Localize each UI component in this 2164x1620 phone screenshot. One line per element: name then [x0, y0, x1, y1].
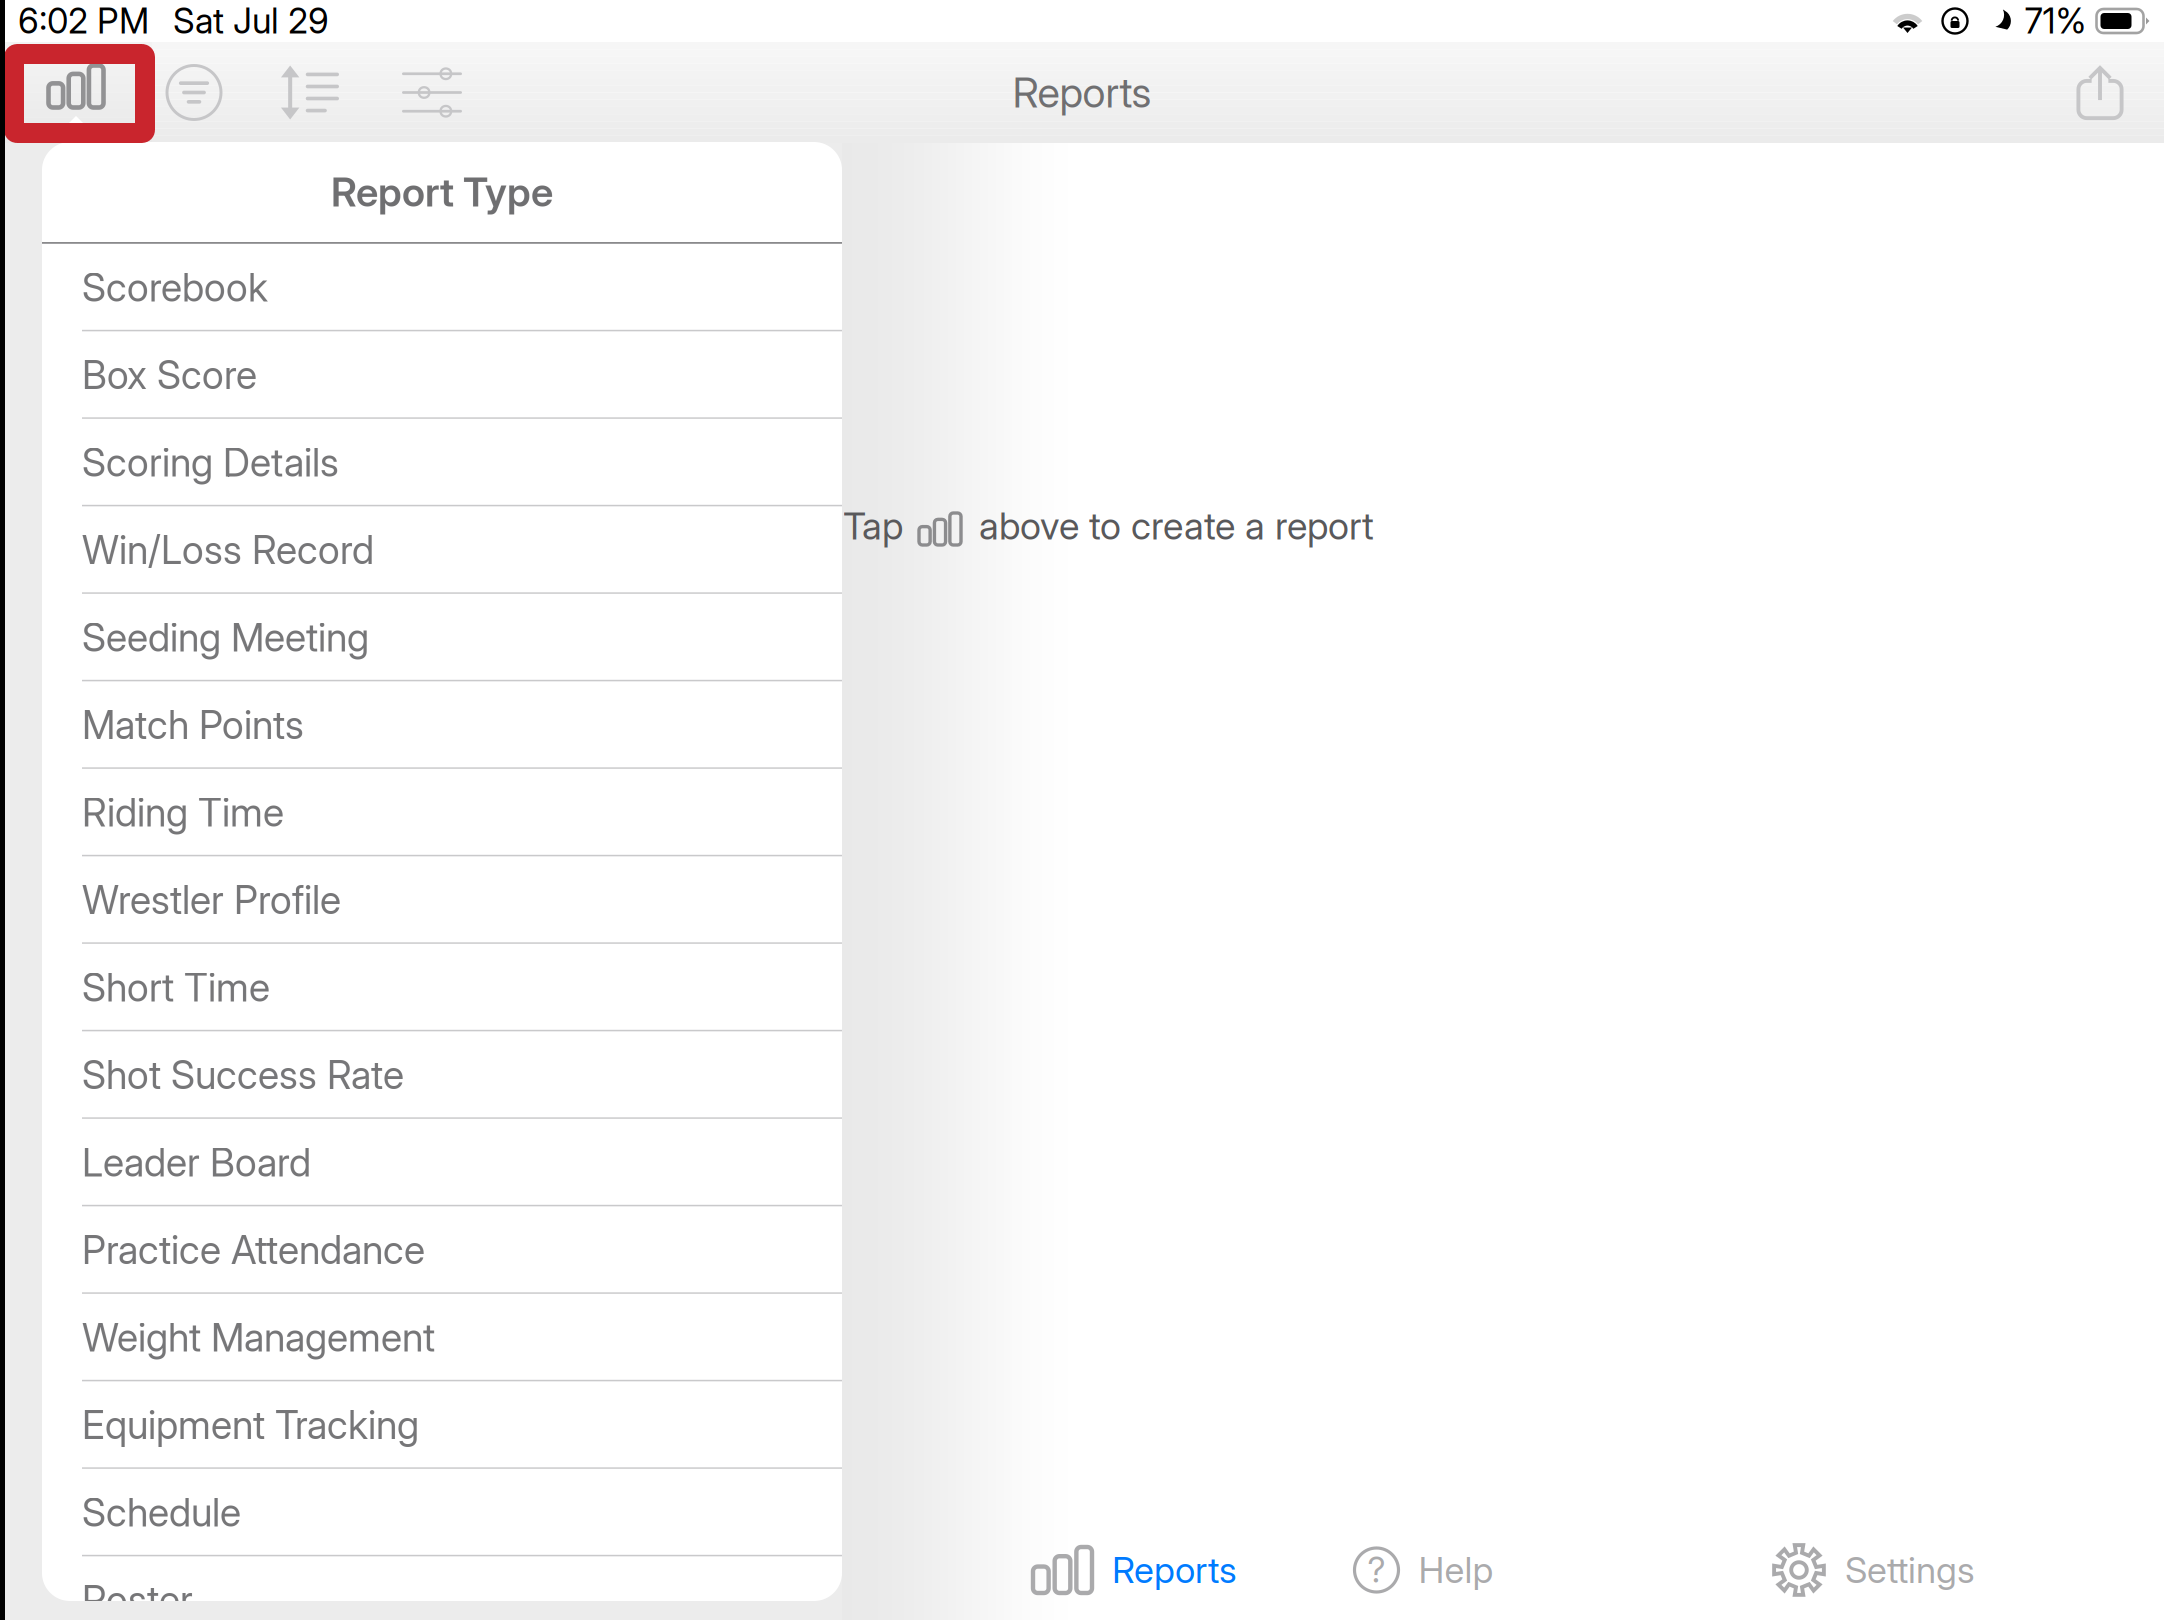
staticText: Equipment Tracking [82, 1402, 419, 1448]
button[interactable]: Scoring Details [42, 419, 842, 506]
staticText: Scorebook [82, 264, 268, 311]
staticText: Sat Jul 29 [173, 0, 329, 42]
button[interactable]: Weight Management [42, 1294, 842, 1381]
button[interactable]: Wrestler Profile [42, 856, 842, 944]
button[interactable]: Match Points [42, 681, 842, 769]
staticText: Reports [1112, 1548, 1237, 1592]
staticText: Short Time [82, 964, 270, 1011]
button[interactable]: Sort [236, 42, 384, 143]
button[interactable]: Filter [152, 42, 236, 143]
button[interactable]: Reports [988, 1520, 1282, 1620]
staticText: above to create a report [979, 503, 1374, 549]
staticText: Scoring Details [82, 439, 339, 486]
button[interactable]: Settings [1730, 1520, 2018, 1620]
button[interactable]: Report type [0, 42, 152, 143]
staticText: Wrestler Profile [82, 877, 341, 923]
staticText: Tap [843, 503, 903, 549]
button[interactable]: Short Time [42, 944, 842, 1031]
button[interactable]: Leader Board [42, 1119, 842, 1206]
staticText: 6:02 PM [18, 0, 149, 42]
staticText: Settings [1845, 1548, 1975, 1592]
staticText: ? [1367, 1549, 1385, 1591]
staticText: Win/Loss Record [82, 527, 374, 573]
staticText: 71% [2024, 0, 2086, 42]
button[interactable]: Riding Time [42, 769, 842, 856]
button[interactable]: Schedule [42, 1469, 842, 1556]
staticText: Schedule [82, 1489, 241, 1536]
staticText: Shot Success Rate [82, 1052, 404, 1098]
staticText: Practice Attendance [82, 1227, 425, 1273]
staticText: Box Score [82, 352, 257, 398]
button[interactable]: Seeding Meeting [42, 594, 842, 681]
staticText: Help [1418, 1548, 1493, 1592]
staticText: Leader Board [82, 1139, 311, 1186]
button[interactable]: Shot Success Rate [42, 1031, 842, 1119]
button[interactable]: Box Score [42, 331, 842, 419]
button[interactable]: Practice Attendance [42, 1206, 842, 1294]
staticText: Seeding Meeting [82, 614, 369, 661]
button[interactable]: Equipment Tracking [42, 1381, 842, 1469]
button[interactable]: Scorebook [42, 244, 842, 331]
staticText: Riding Time [82, 789, 284, 836]
button[interactable]: Roster [42, 1556, 842, 1620]
button[interactable]: ? [1328, 1520, 1520, 1620]
staticText: Report Type [331, 168, 553, 216]
button[interactable]: Win/Loss Record [42, 506, 842, 594]
staticText: Match Points [82, 702, 304, 748]
button[interactable]: Share [2036, 42, 2164, 143]
staticText: Reports [1012, 67, 1151, 117]
button[interactable]: Display options [384, 42, 480, 143]
staticText: Roster [82, 1577, 193, 1620]
staticText: Weight Management [82, 1314, 435, 1361]
